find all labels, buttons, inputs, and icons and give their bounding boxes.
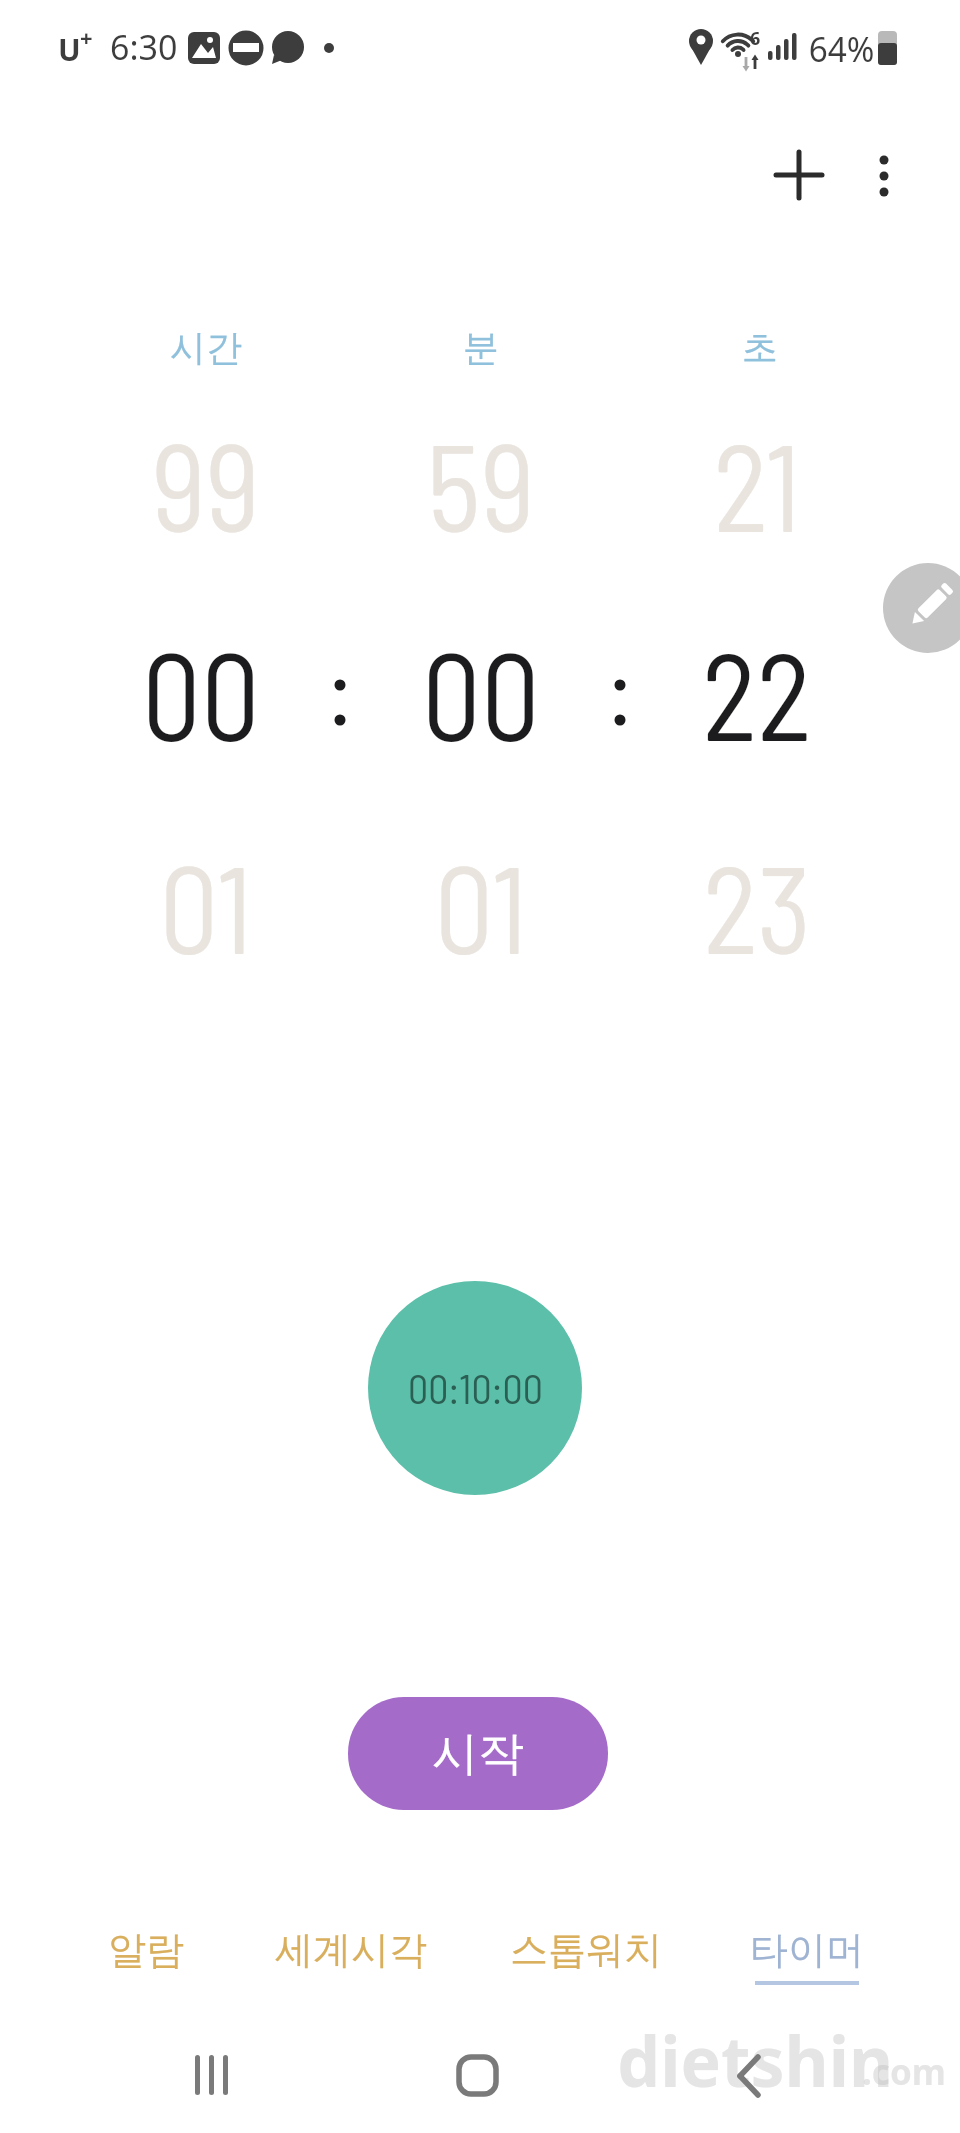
staticText: 시작 bbox=[432, 1725, 524, 1783]
staticText: 시간 bbox=[170, 325, 242, 370]
staticText: 00:10:00 bbox=[408, 1364, 543, 1412]
button[interactable] bbox=[710, 2035, 790, 2115]
button[interactable]: 00:10:00 bbox=[368, 1281, 582, 1495]
button[interactable] bbox=[883, 563, 960, 653]
staticText: 00 bbox=[142, 618, 260, 766]
staticText: 64% bbox=[809, 25, 875, 73]
staticText: 알람 bbox=[108, 1926, 184, 1974]
staticText: U bbox=[58, 29, 81, 70]
staticText: 23 bbox=[703, 831, 812, 979]
button[interactable] bbox=[175, 2035, 255, 2115]
button[interactable] bbox=[438, 2035, 518, 2115]
button[interactable]: 타이머 bbox=[727, 1915, 887, 1985]
staticText: 01 bbox=[434, 831, 528, 979]
button[interactable] bbox=[854, 139, 914, 211]
staticText: 59 bbox=[427, 409, 535, 557]
staticText: 6:30 bbox=[110, 24, 178, 70]
staticText: 타이머 bbox=[750, 1926, 864, 1974]
staticText: 00 bbox=[422, 618, 540, 766]
button[interactable]: 스톱워치 bbox=[481, 1915, 691, 1985]
staticText: 21 bbox=[713, 409, 802, 557]
staticText: 01 bbox=[159, 831, 252, 979]
staticText: 초 bbox=[742, 325, 778, 370]
button[interactable]: 세계시각 bbox=[246, 1915, 456, 1985]
staticText: .com bbox=[862, 2048, 946, 2096]
button[interactable] bbox=[763, 139, 835, 211]
staticText: 스톱워치 bbox=[510, 1926, 662, 1974]
staticText: + bbox=[80, 22, 93, 52]
button[interactable]: 시작 bbox=[348, 1697, 608, 1810]
staticText: 세계시각 bbox=[275, 1926, 427, 1974]
staticText: 6 bbox=[750, 26, 761, 51]
staticText: 22 bbox=[702, 618, 812, 766]
button[interactable]: 알람 bbox=[51, 1915, 241, 1985]
staticText: 분 bbox=[463, 325, 499, 370]
staticText: dietshin bbox=[617, 2012, 894, 2107]
staticText: 99 bbox=[152, 409, 260, 557]
